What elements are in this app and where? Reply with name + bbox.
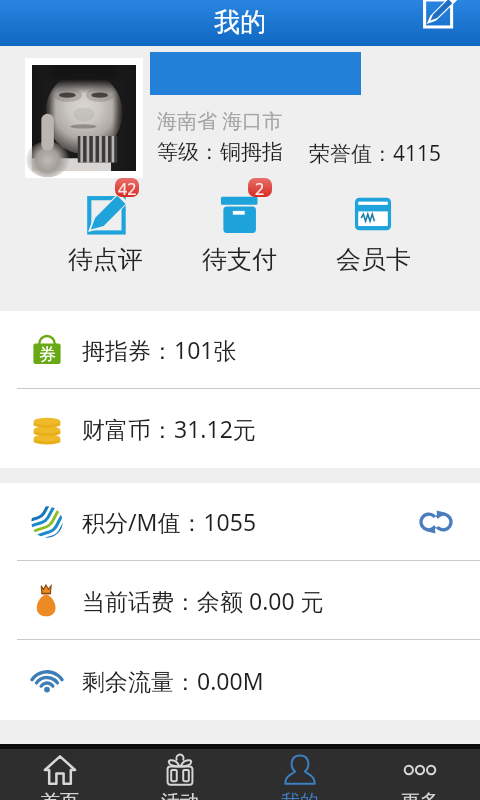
staticText: 拇指券：101张 xyxy=(82,334,237,365)
staticText: 42 xyxy=(118,178,137,197)
staticText: 2 xyxy=(255,178,265,197)
button[interactable]: 活动 xyxy=(120,749,240,800)
staticText: 会员卡 xyxy=(336,244,411,275)
button[interactable]: Membership card xyxy=(306,192,440,275)
staticText: 荣誉值：4115 xyxy=(309,139,442,168)
button[interactable]: Pending payments xyxy=(172,192,306,275)
staticText: 更多 xyxy=(401,790,439,800)
staticText: 我的 xyxy=(281,790,319,800)
button[interactable]: Edit profile xyxy=(421,0,457,32)
button[interactable]: Refresh xyxy=(420,506,452,538)
button[interactable]: Avatar xyxy=(32,65,136,171)
staticText: 券 xyxy=(39,344,56,365)
staticText: 我的 xyxy=(214,6,266,39)
button[interactable]: 首页 xyxy=(0,749,120,800)
button[interactable]: 我的 xyxy=(240,749,360,800)
button[interactable]: 积分/M值：1055 xyxy=(0,483,480,560)
button[interactable]: 更多 xyxy=(360,749,480,800)
button[interactable]: 当前话费：余额 0.00 元 xyxy=(0,561,480,639)
staticText: 等级：铜拇指 xyxy=(157,139,283,165)
staticText: 首页 xyxy=(41,790,79,800)
staticText: 待支付 xyxy=(202,244,277,275)
button[interactable]: Pending reviews xyxy=(39,192,172,275)
staticText: 活动 xyxy=(161,790,199,800)
staticText: 当前话费：余额 0.00 元 xyxy=(82,585,324,616)
staticText: 海南省 海口市 xyxy=(157,107,283,134)
button[interactable]: 券 xyxy=(0,311,480,388)
button[interactable]: 剩余流量：0.00M xyxy=(0,640,480,720)
staticText: 剩余流量：0.00M xyxy=(82,665,264,696)
staticText: 财富币：31.12元 xyxy=(82,413,256,444)
staticText: 待点评 xyxy=(68,244,143,275)
button[interactable]: 财富币：31.12元 xyxy=(0,389,480,468)
staticText: 积分/M值：1055 xyxy=(82,506,257,537)
